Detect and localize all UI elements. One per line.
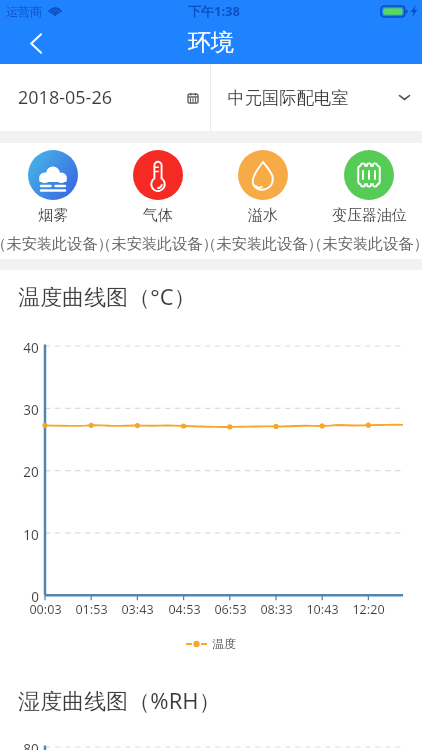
staticText: 30 (23, 401, 39, 419)
staticText: 气体 (143, 206, 173, 225)
staticText: 0 (31, 588, 39, 606)
staticText: 2018-05-26 (18, 85, 112, 110)
staticText: 80 (23, 740, 39, 750)
staticText: （未安装此设备） (96, 234, 218, 253)
staticText: 下午1:38 (188, 2, 240, 20)
staticText: 10:43 (306, 601, 339, 618)
button[interactable]: 烟雾 (0, 143, 105, 259)
button[interactable]: 溢水 (210, 143, 316, 259)
staticText: 06:53 (214, 601, 247, 618)
staticText: 运营商 (6, 4, 42, 19)
staticText: 温度曲线图（°C） (18, 281, 196, 311)
staticText: 10 (23, 526, 39, 544)
staticText: （未安装此设备） (201, 234, 323, 253)
staticText: 温度 (212, 636, 236, 651)
button[interactable]: 变压器油位 (316, 143, 422, 259)
button[interactable]: Back (0, 22, 56, 64)
staticText: 04:53 (168, 601, 201, 618)
button[interactable]: 2018-05-26 (0, 64, 210, 131)
staticText: 00:03 (29, 601, 62, 618)
staticText: 08:33 (260, 601, 293, 618)
staticText: 20 (23, 463, 39, 481)
staticText: 变压器油位 (332, 206, 407, 225)
staticText: （未安装此设备） (0, 234, 113, 253)
staticText: 溢水 (248, 206, 278, 225)
staticText: 环境 (188, 28, 234, 57)
staticText: 烟雾 (38, 206, 68, 225)
staticText: 12:20 (352, 601, 385, 618)
staticText: 40 (23, 339, 39, 357)
staticText: 湿度曲线图（%RH） (18, 685, 221, 715)
staticText: 中元国际配电室 (227, 87, 349, 109)
staticText: 01:53 (75, 601, 108, 618)
staticText: （未安装此设备） (307, 234, 422, 253)
button[interactable]: 中元国际配电室 (211, 64, 422, 131)
button[interactable]: 气体 (105, 143, 210, 259)
staticText: 03:43 (121, 601, 154, 618)
